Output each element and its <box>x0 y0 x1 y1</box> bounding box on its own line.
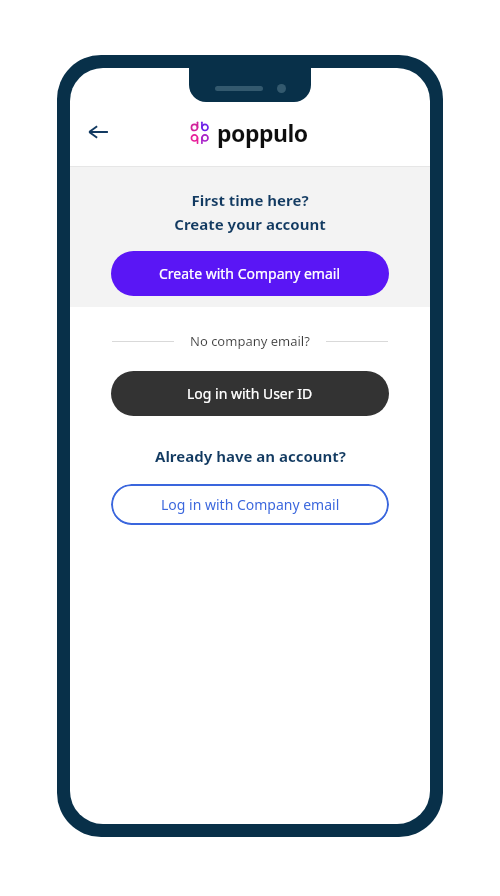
staticText: poppulo <box>217 117 308 148</box>
staticText: Log in with Company email <box>161 495 340 514</box>
staticText: No company email? <box>190 332 310 350</box>
staticText: Create with Company email <box>159 264 341 283</box>
button[interactable]: Log in with User ID <box>111 371 389 416</box>
staticText: Already have an account? <box>155 446 346 466</box>
staticText: First time here? <box>191 190 309 210</box>
staticText: Log in with User ID <box>187 384 313 403</box>
button[interactable]: Back <box>76 110 120 154</box>
button[interactable]: Create with Company email <box>111 251 389 296</box>
button[interactable]: Log in with Company email <box>111 484 389 525</box>
staticText: Create your account <box>174 214 326 234</box>
